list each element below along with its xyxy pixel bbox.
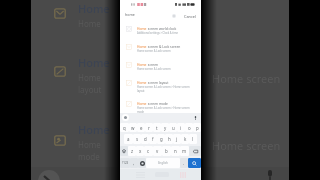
- staticText: s: [136, 136, 139, 142]
- button[interactable]: Search: [188, 158, 201, 168]
- staticText: Home: [137, 101, 147, 105]
- staticText: Cancel: [184, 14, 196, 19]
- staticText: g: [160, 136, 163, 142]
- button[interactable]: Shift: [120, 146, 128, 156]
- button[interactable]: English: [146, 158, 180, 168]
- staticText: Home screen: [212, 71, 281, 86]
- staticText: Home screen & Lock screen > Home screen …: [137, 106, 193, 114]
- staticText: screen: [147, 62, 159, 66]
- staticText: p: [196, 125, 199, 131]
- button[interactable]: Clear query: [169, 11, 178, 20]
- button[interactable]: Home: [120, 76, 201, 97]
- button[interactable]: m: [180, 146, 189, 156]
- button[interactable]: i: [177, 123, 185, 132]
- staticText: English: [158, 161, 168, 165]
- staticText: n: [174, 148, 177, 154]
- staticText: e: [140, 125, 143, 131]
- button[interactable]: d: [141, 134, 149, 144]
- button[interactable]: e: [137, 123, 145, 132]
- button[interactable]: Voice input: [192, 114, 199, 121]
- staticText: w: [131, 125, 135, 131]
- staticText: t: [156, 125, 158, 131]
- button[interactable]: u: [169, 123, 177, 132]
- button[interactable]: y: [161, 123, 169, 132]
- button[interactable]: g: [157, 134, 165, 144]
- staticText: o: [188, 125, 191, 131]
- staticText: screen world clock: [147, 26, 177, 30]
- staticText: Home screen & Lock screen: [137, 67, 171, 71]
- staticText: l: [192, 136, 194, 142]
- staticText: f: [152, 136, 154, 142]
- button[interactable]: v: [153, 146, 162, 156]
- button[interactable]: Home: [152, 169, 172, 180]
- staticText: Home: [78, 55, 110, 70]
- button[interactable]: q: [120, 123, 129, 132]
- staticText: screen mode: [147, 101, 168, 105]
- staticText: layout: [78, 84, 102, 95]
- button[interactable]: Home: [120, 22, 201, 40]
- button[interactable]: x: [136, 146, 144, 156]
- button[interactable]: z: [128, 146, 136, 156]
- staticText: a: [127, 136, 130, 142]
- staticText: screen layout: [147, 80, 169, 84]
- staticText: h: [168, 136, 171, 142]
- staticText: Home: [78, 18, 101, 29]
- button[interactable]: w: [129, 123, 137, 132]
- staticText: k: [184, 136, 187, 142]
- staticText: Home: [137, 62, 147, 66]
- button[interactable]: j: [173, 134, 181, 144]
- staticText: c: [147, 148, 150, 154]
- button[interactable]: t: [153, 123, 161, 132]
- staticText: u: [172, 125, 175, 131]
- staticText: d: [144, 136, 147, 142]
- staticText: Home screen & Lock screen > Home screen …: [137, 85, 193, 93]
- button[interactable]: n: [171, 146, 180, 156]
- button[interactable]: Home: [120, 58, 201, 76]
- button[interactable]: h: [165, 134, 173, 144]
- button[interactable]: p: [193, 123, 201, 132]
- staticText: Home screen & Lock screen: [137, 49, 171, 53]
- button[interactable]: k: [181, 134, 189, 144]
- staticText: screen & Lock screen: [147, 44, 181, 48]
- staticText: m: [182, 148, 187, 154]
- staticText: z: [131, 148, 134, 154]
- staticText: v: [156, 148, 159, 154]
- staticText: ?123: [122, 161, 129, 165]
- staticText: Home: [137, 26, 147, 30]
- button[interactable]: Google Assistant: [122, 114, 129, 121]
- button[interactable]: l: [189, 134, 197, 144]
- staticText: mode: [78, 151, 100, 162]
- staticText: Home: [137, 80, 147, 84]
- staticText: q: [123, 125, 126, 131]
- button[interactable]: Cancel: [183, 9, 197, 21]
- staticText: x: [139, 148, 142, 154]
- staticText: ,: [133, 160, 135, 166]
- staticText: j: [176, 136, 178, 142]
- button[interactable]: f: [149, 134, 157, 144]
- button[interactable]: a: [124, 134, 133, 144]
- staticText: r: [148, 125, 150, 131]
- button[interactable]: c: [144, 146, 153, 156]
- button[interactable]: Emoji: [138, 158, 146, 168]
- staticText: Additional settings > Clock & time: [137, 31, 178, 35]
- button[interactable]: r: [145, 123, 153, 132]
- staticText: home: [125, 12, 135, 17]
- button[interactable]: o: [185, 123, 193, 132]
- staticText: Home: [78, 139, 101, 150]
- staticText: i: [180, 125, 182, 131]
- staticText: b: [165, 148, 168, 154]
- button[interactable]: Period: [180, 158, 188, 168]
- button[interactable]: Back: [174, 169, 192, 180]
- button[interactable]: Backspace: [189, 146, 201, 156]
- button[interactable]: b: [162, 146, 171, 156]
- button[interactable]: Symbols: [130, 158, 138, 168]
- staticText: y: [164, 125, 167, 131]
- staticText: Home: [137, 44, 147, 48]
- staticText: Home: [78, 72, 101, 83]
- button[interactable]: Home: [120, 40, 201, 58]
- button[interactable]: ?123: [120, 158, 130, 168]
- button[interactable]: Home: [120, 97, 201, 113]
- button[interactable]: s: [133, 134, 141, 144]
- staticText: .: [183, 160, 185, 166]
